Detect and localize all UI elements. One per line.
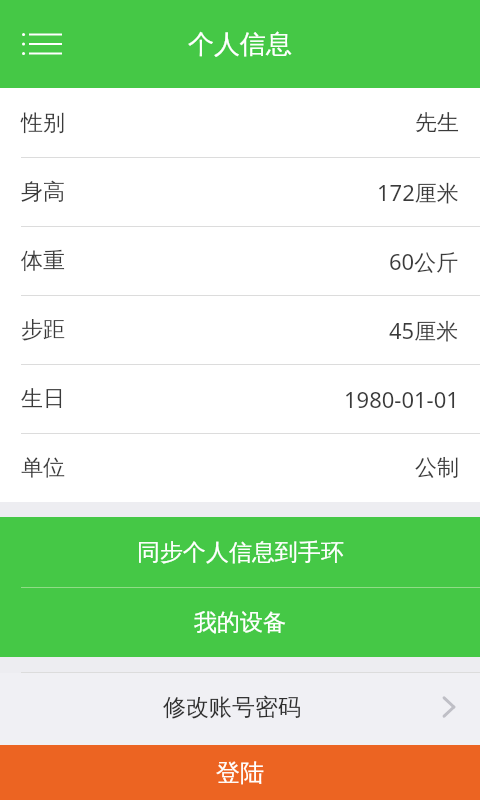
staticText: 修改账号密码 (163, 693, 301, 722)
staticText: 172厘米 (377, 177, 459, 207)
staticText: 同步个人信息到手环 (137, 538, 344, 567)
staticText: 个人信息 (188, 28, 292, 61)
button[interactable]: 修改账号密码 (0, 673, 480, 741)
button[interactable]: 步距 (0, 296, 480, 364)
staticText: 45厘米 (389, 315, 459, 345)
button[interactable]: 登陆 (0, 745, 480, 800)
button[interactable]: 身高 (0, 158, 480, 226)
button[interactable]: 性别 (0, 88, 480, 157)
staticText: 登陆 (216, 758, 264, 788)
button[interactable]: 生日 (0, 365, 480, 433)
staticText: 生日 (21, 385, 65, 413)
staticText: 1980-01-01 (344, 384, 459, 414)
staticText: 体重 (21, 247, 65, 275)
staticText: 60公斤 (389, 246, 459, 276)
button[interactable]: 我的设备 (0, 588, 480, 657)
button[interactable]: 单位 (0, 434, 480, 502)
staticText: 我的设备 (194, 608, 286, 637)
button[interactable]: Menu (14, 16, 70, 72)
staticText: 单位 (21, 454, 65, 482)
button[interactable]: 体重 (0, 227, 480, 295)
staticText: 公制 (415, 454, 459, 482)
button[interactable]: 同步个人信息到手环 (0, 517, 480, 587)
staticText: 先生 (415, 109, 459, 137)
staticText: 身高 (21, 178, 65, 206)
staticText: 性别 (21, 109, 65, 137)
staticText: 步距 (21, 316, 65, 344)
